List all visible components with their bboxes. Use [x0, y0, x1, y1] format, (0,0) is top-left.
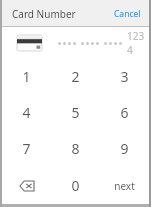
staticText: 6	[120, 103, 129, 122]
staticText: 5	[71, 103, 80, 122]
staticText: 3	[120, 67, 129, 86]
button[interactable]: 7	[2, 130, 51, 167]
staticText: 1	[22, 67, 31, 86]
button[interactable]: Cancel	[106, 3, 149, 25]
staticText: 7	[22, 139, 31, 158]
staticText: next	[114, 179, 135, 193]
staticText: Cancel	[114, 8, 141, 20]
button[interactable]: next	[100, 167, 149, 204]
button[interactable]: 8	[51, 130, 100, 167]
button[interactable]: Delete	[2, 167, 51, 204]
button[interactable]: 1234	[2, 27, 149, 58]
staticText: 4	[22, 103, 31, 122]
button[interactable]: 1	[2, 58, 51, 94]
staticText: 1234	[127, 29, 149, 57]
staticText: 9	[120, 139, 129, 158]
staticText: 2	[71, 67, 80, 86]
button[interactable]: 5	[51, 94, 100, 130]
staticText: 8	[71, 139, 80, 158]
staticText: 0	[71, 176, 80, 195]
button[interactable]: 9	[100, 130, 149, 167]
button[interactable]: 2	[51, 58, 100, 94]
button[interactable]: 4	[2, 94, 51, 130]
button[interactable]: 0	[51, 167, 100, 204]
staticText: Card Number	[12, 7, 76, 21]
button[interactable]: 3	[100, 58, 149, 94]
button[interactable]: 6	[100, 94, 149, 130]
